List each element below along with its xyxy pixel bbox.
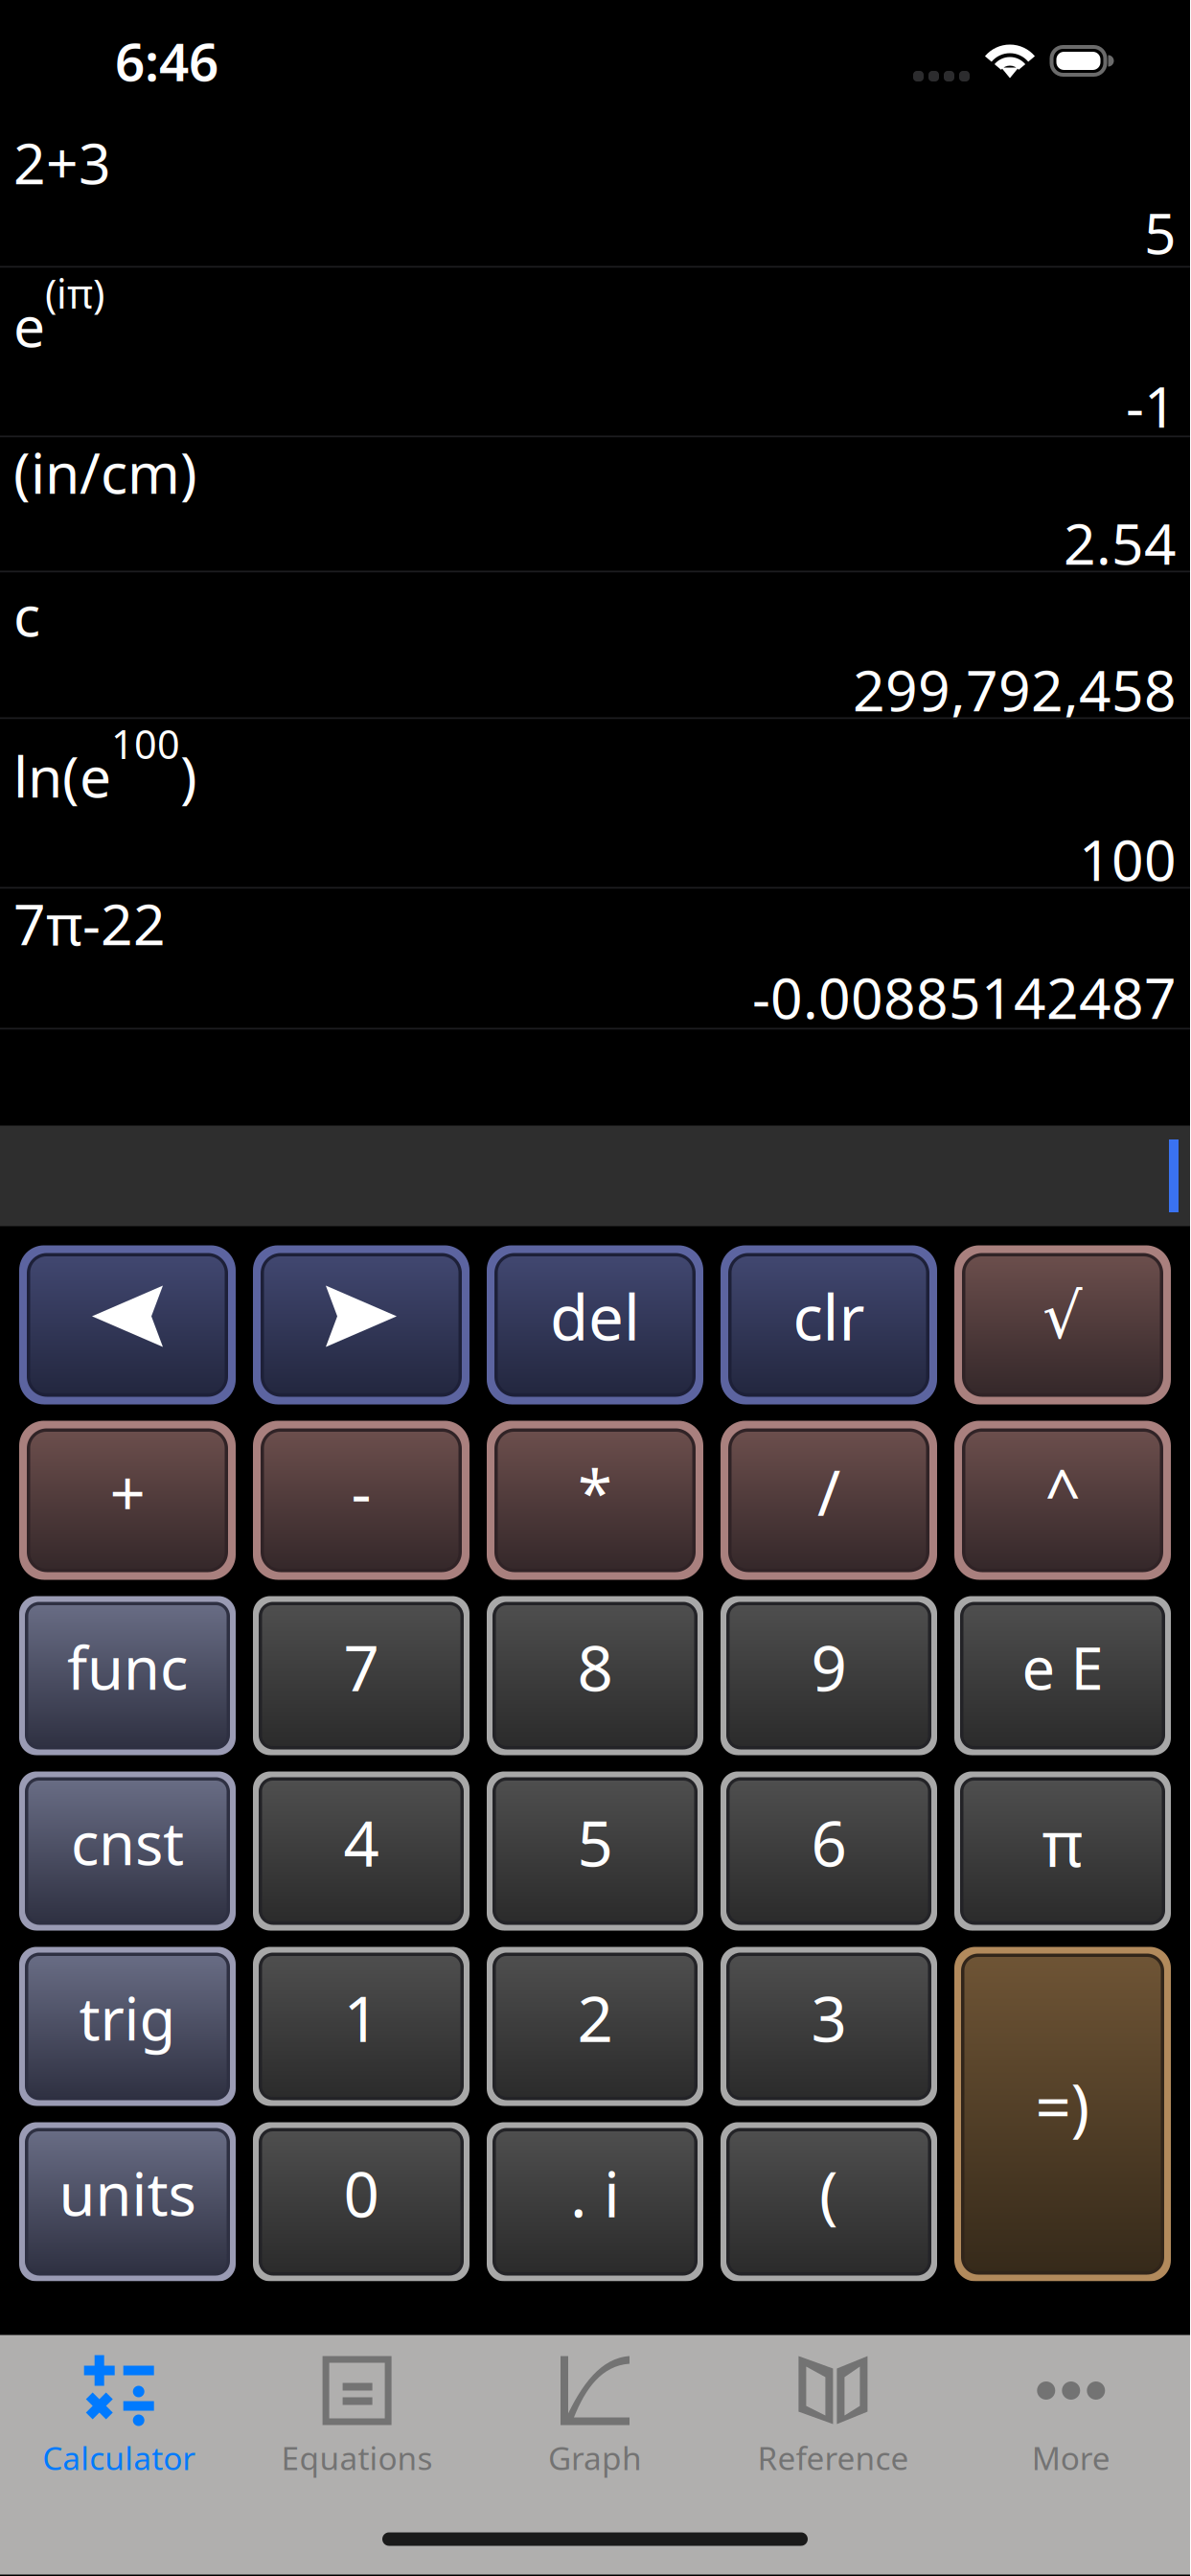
staticText: 100 [1079, 822, 1177, 897]
button[interactable]: 2 [487, 1947, 703, 2106]
staticText: Graph [548, 2437, 642, 2479]
button[interactable]: 9 [721, 1596, 937, 1755]
staticText: - [351, 1450, 371, 1533]
staticText: π [1042, 1801, 1083, 1884]
staticText: 5 [1144, 195, 1177, 270]
button[interactable]: ( [721, 2122, 937, 2281]
staticText: 6 [811, 1801, 847, 1884]
staticText: 1 [344, 1976, 379, 2059]
staticText: 7 [344, 1625, 379, 1709]
button[interactable]: =) [954, 1947, 1171, 2281]
button[interactable] [253, 1245, 470, 1404]
staticText: 2 [577, 1976, 613, 2059]
staticText: Reference [757, 2437, 909, 2479]
button[interactable]: / [721, 1421, 937, 1580]
button[interactable]: 7 [253, 1596, 470, 1755]
staticText: 299,792,458 [853, 652, 1177, 727]
button[interactable]: Equations [238, 2335, 476, 2492]
staticText: 2.54 [1064, 506, 1177, 580]
button[interactable]: trig [19, 1947, 236, 2106]
staticText: 100 [111, 717, 180, 770]
button[interactable]: 4 [253, 1771, 470, 1931]
staticText: . i [570, 2152, 620, 2235]
staticText: + [110, 1450, 145, 1533]
staticText: 0 [344, 2152, 379, 2235]
staticText: ) [180, 738, 197, 813]
button[interactable]: 0 [253, 2122, 470, 2281]
staticText: (iπ) [45, 267, 104, 320]
staticText: clr [793, 1275, 865, 1358]
staticText: 9 [811, 1625, 847, 1709]
staticText: -1 [1126, 369, 1177, 443]
button[interactable]: func [19, 1596, 236, 1755]
staticText: * [578, 1450, 612, 1533]
button[interactable]: 5 [487, 1771, 703, 1931]
staticText: =) [1035, 2064, 1090, 2147]
button[interactable]: cnst [19, 1771, 236, 1931]
staticText: ( [819, 2152, 838, 2235]
button[interactable] [19, 1245, 236, 1404]
button[interactable]: √ [954, 1245, 1171, 1404]
staticText: 4 [344, 1801, 379, 1884]
button[interactable]: 8 [487, 1596, 703, 1755]
staticText: 5 [577, 1801, 613, 1884]
staticText: ln(e [13, 738, 111, 813]
button[interactable]: e E [954, 1596, 1171, 1755]
staticText: 3 [811, 1976, 847, 2059]
staticText: 7π-22 [13, 886, 166, 961]
staticText: Calculator [42, 2437, 196, 2479]
button[interactable]: 1 [253, 1947, 470, 2106]
button[interactable]: del [487, 1245, 703, 1404]
staticText: 6:46 [115, 26, 218, 96]
staticText: c [13, 577, 40, 652]
staticText: Equations [281, 2437, 433, 2479]
staticText: (in/cm) [13, 435, 197, 509]
button[interactable]: Calculator [0, 2335, 238, 2492]
button[interactable]: . i [487, 2122, 703, 2281]
staticText: √ [1042, 1281, 1083, 1352]
button[interactable]: units [19, 2122, 236, 2281]
staticText: cnst [71, 1803, 184, 1881]
staticText: units [59, 2154, 196, 2232]
staticText: / [817, 1450, 840, 1533]
staticText: 8 [577, 1625, 613, 1709]
staticText: -0.00885142487 [752, 960, 1177, 1035]
button[interactable]: * [487, 1421, 703, 1580]
button[interactable]: More [952, 2335, 1190, 2492]
button[interactable]: - [253, 1421, 470, 1580]
staticText: del [550, 1275, 640, 1358]
button[interactable]: π [954, 1771, 1171, 1931]
button[interactable]: + [19, 1421, 236, 1580]
staticText: 2+3 [13, 125, 111, 200]
staticText: ^ [1045, 1450, 1080, 1533]
button[interactable]: 6 [721, 1771, 937, 1931]
button[interactable]: clr [721, 1245, 937, 1404]
button[interactable]: Graph [476, 2335, 714, 2492]
button[interactable]: 3 [721, 1947, 937, 2106]
staticText: More [1032, 2437, 1110, 2479]
button[interactable]: Reference [714, 2335, 952, 2492]
button[interactable]: ^ [954, 1421, 1171, 1580]
staticText: e [13, 288, 45, 363]
staticText: func [67, 1628, 188, 1706]
staticText: trig [79, 1979, 176, 2057]
staticText: e E [1022, 1628, 1103, 1706]
